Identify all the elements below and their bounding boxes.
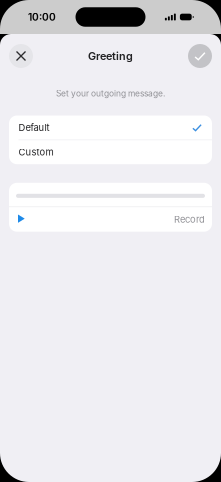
staticText: 10:00	[28, 11, 56, 23]
button[interactable]: Default	[9, 115, 212, 139]
button[interactable]: Close	[9, 44, 33, 68]
staticText: Default	[18, 122, 49, 133]
button[interactable]: Done	[188, 44, 212, 68]
button[interactable]: Custom	[9, 140, 212, 164]
staticText: Record	[174, 214, 205, 225]
button[interactable]: Record	[174, 207, 205, 232]
staticText: Custom	[18, 147, 53, 158]
staticText: Greeting	[88, 49, 133, 63]
staticText: Set your outgoing message.	[56, 88, 165, 99]
button[interactable]: Play	[13, 207, 29, 232]
